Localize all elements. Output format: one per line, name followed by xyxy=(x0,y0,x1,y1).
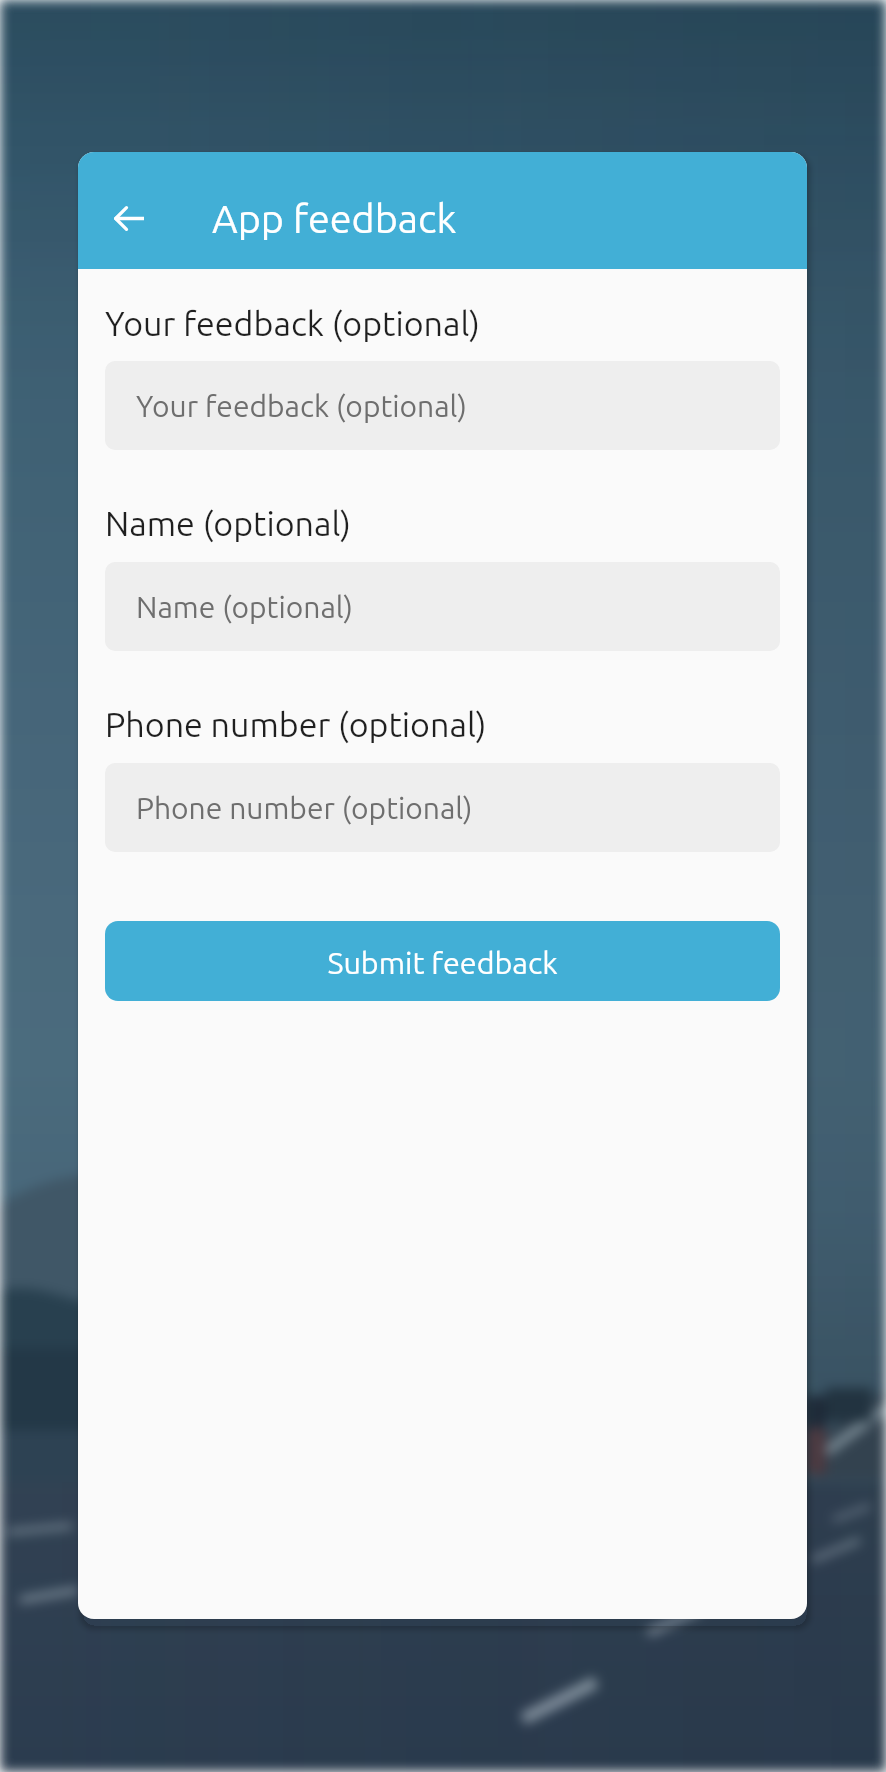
button[interactable]: Phone number (optional) xyxy=(105,763,780,852)
staticText: Submit feedback xyxy=(327,946,558,980)
button[interactable]: Name (optional) xyxy=(105,562,780,651)
staticText: Name (optional) xyxy=(105,504,351,542)
staticText: App feedback xyxy=(212,196,457,240)
button[interactable]: Back xyxy=(90,188,168,248)
staticText: Phone number (optional) xyxy=(136,791,473,825)
staticText: Name (optional) xyxy=(136,590,354,624)
staticText: Phone number (optional) xyxy=(105,705,487,743)
staticText: Your feedback (optional) xyxy=(136,389,467,423)
button[interactable]: Submit feedback xyxy=(105,921,780,1001)
button[interactable]: Your feedback (optional) xyxy=(105,361,780,450)
staticText: Your feedback (optional) xyxy=(105,304,480,342)
